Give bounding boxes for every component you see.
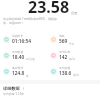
staticText: 平均心率 <box>59 50 71 54</box>
staticText: 23.58 <box>28 0 70 18</box>
staticText: 次/分 <box>69 57 76 61</box>
staticText: 分/公里 <box>26 57 35 61</box>
button[interactable]: 消耗 <box>50 34 75 45</box>
staticText: 米 <box>26 74 29 77</box>
staticText: 124.8 <box>12 70 25 77</box>
staticText: 公里 <box>71 11 78 15</box>
staticText: 01:16:54 <box>12 38 32 45</box>
staticText: 千卡 <box>69 42 75 45</box>
staticText: 18.40 <box>12 54 25 61</box>
staticText: 142 <box>59 54 68 61</box>
staticText: 步/分 <box>73 73 80 77</box>
button[interactable]: 详细数据 <box>3 86 25 91</box>
staticText: 累计爬升 <box>12 66 24 70</box>
staticText: 运动时长 <box>12 34 24 38</box>
staticText: 138.6 <box>59 70 72 77</box>
button[interactable]: 平均配速 <box>3 50 35 61</box>
button[interactable]: 运动时长 <box>3 34 32 45</box>
staticText: 本次跑步超越了同期跑者的85%，继续加油，再接再厉！ <box>3 17 61 25</box>
staticText: 消耗 <box>59 34 65 38</box>
button[interactable]: 累计爬升 <box>3 66 29 77</box>
staticText: 平均配速 <box>12 50 24 54</box>
staticText: 平均步频 <box>59 66 71 70</box>
staticText: 详细数据 <box>3 86 20 91</box>
button[interactable]: 平均步频 <box>50 66 80 77</box>
staticText: 569 <box>59 38 68 45</box>
button[interactable]: 平均心率 <box>50 50 76 61</box>
staticText: 平均步幅 1.13米 <box>3 92 24 96</box>
